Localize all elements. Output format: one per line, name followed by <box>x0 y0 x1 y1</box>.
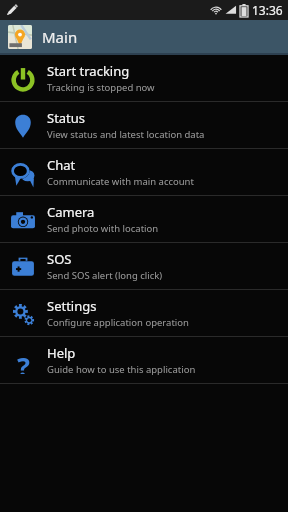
staticText: Start tracking <box>47 62 130 80</box>
other: Camera <box>10 207 36 233</box>
staticText: Camera <box>47 203 95 221</box>
button[interactable]: Start tracking <box>0 55 288 101</box>
other: Chat <box>10 160 36 186</box>
staticText: Help <box>47 344 76 362</box>
staticText: Communicate with main account <box>47 175 194 188</box>
button[interactable]: SOS <box>0 243 288 289</box>
staticText: 13:36 <box>252 2 283 18</box>
staticText: ? <box>17 348 30 374</box>
staticText: Guide how to use this application <box>47 363 196 376</box>
other: SOS <box>10 254 36 280</box>
staticText: Status <box>47 109 86 127</box>
other: Start tracking <box>10 66 36 92</box>
button[interactable]: Main <box>0 20 288 53</box>
staticText: Tracking is stopped now <box>47 81 155 94</box>
staticText: Configure application operation <box>47 316 189 329</box>
staticText: View status and latest location data <box>47 128 205 141</box>
other: Settings <box>10 301 36 327</box>
button[interactable]: Chat <box>0 149 288 195</box>
button[interactable]: Settings <box>0 290 288 336</box>
other: Status <box>10 113 36 139</box>
button[interactable]: Help <box>0 337 288 383</box>
button[interactable]: Status <box>0 102 288 148</box>
staticText: Send SOS alert (long click) <box>47 269 163 282</box>
staticText: Main <box>42 27 78 47</box>
button[interactable]: Camera <box>0 196 288 242</box>
staticText: SOS <box>47 250 72 268</box>
other: Help <box>10 348 36 374</box>
staticText: Send photo with location <box>47 222 159 235</box>
staticText: Settings <box>47 297 97 315</box>
staticText: Chat <box>47 156 76 174</box>
